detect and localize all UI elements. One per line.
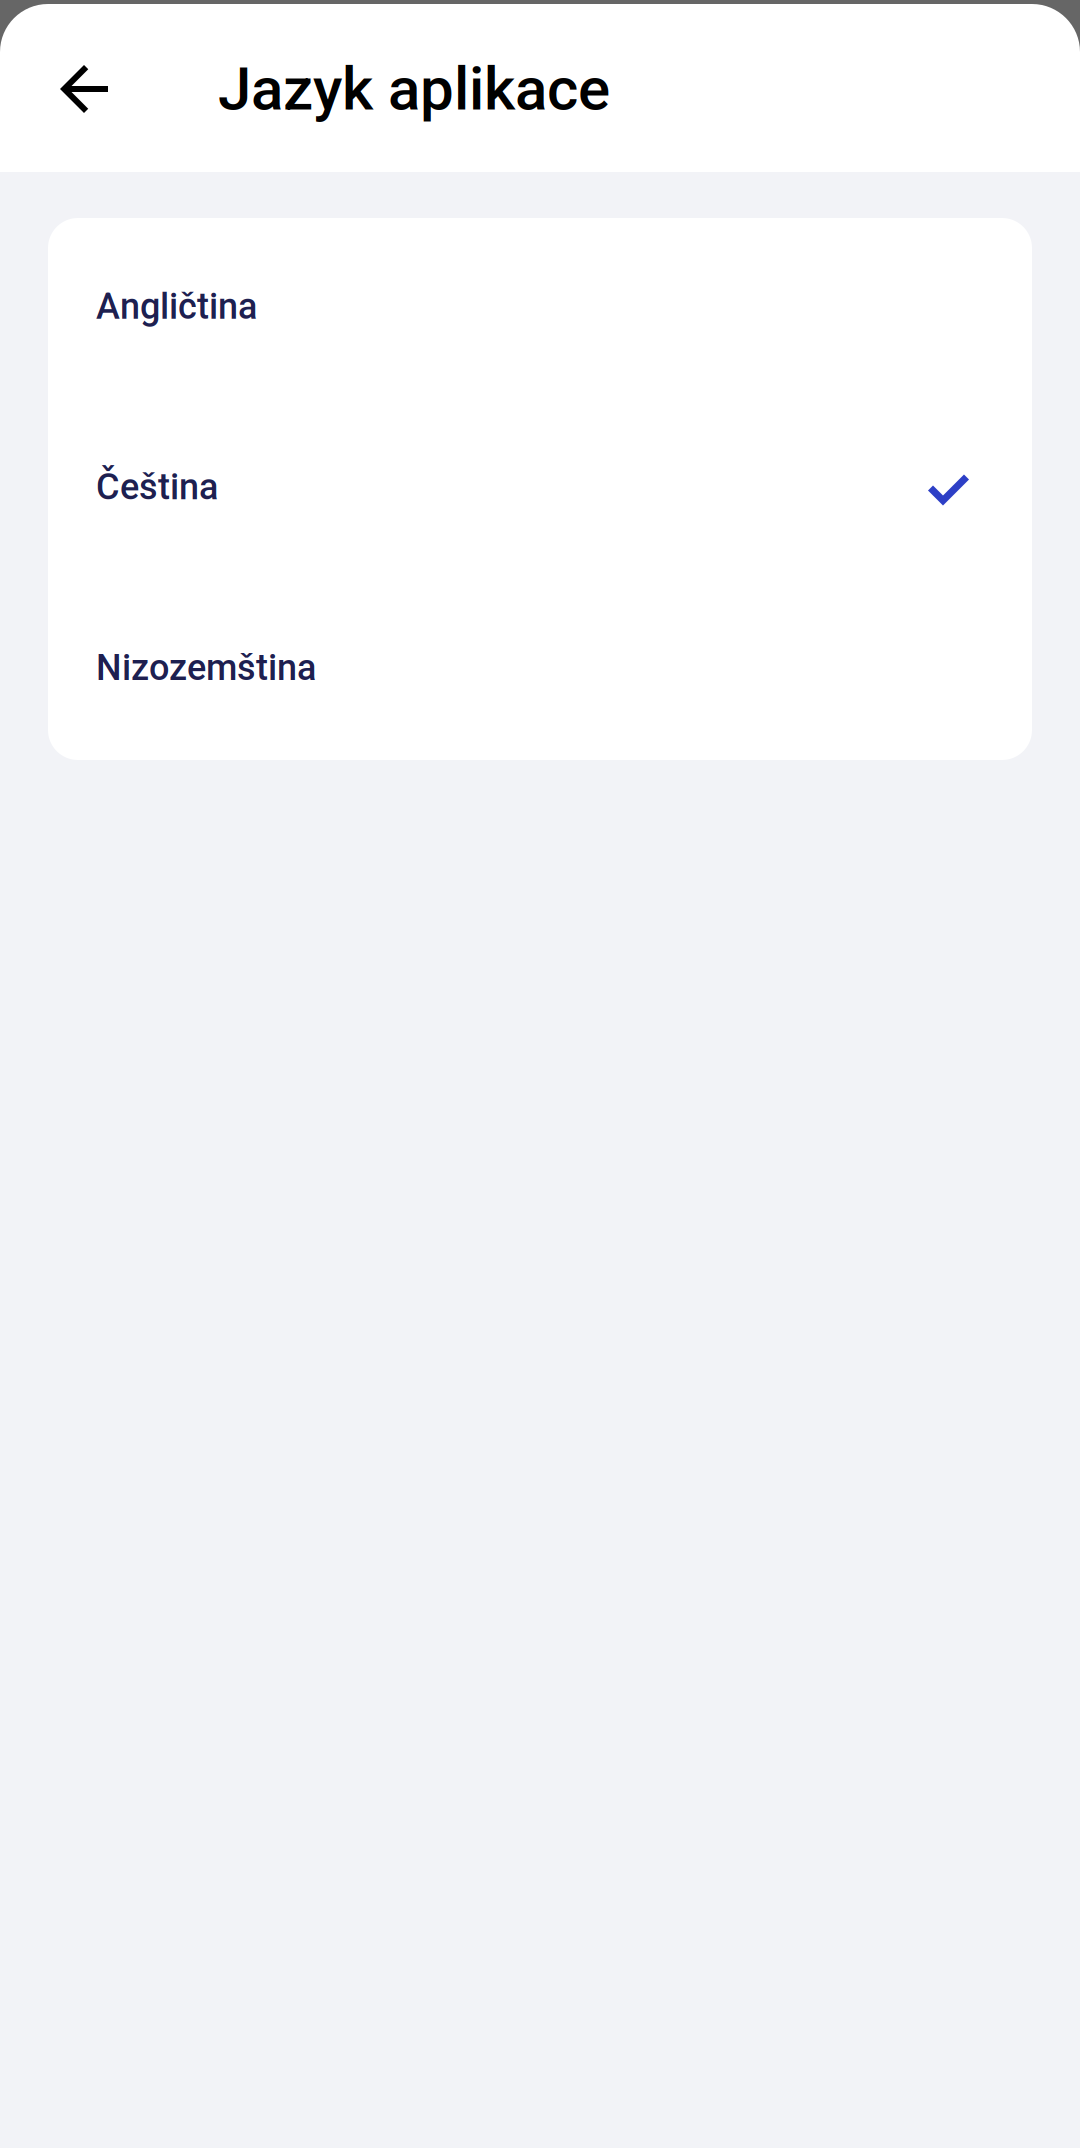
staticText: Nizozemština: [96, 647, 316, 689]
button[interactable]: Nizozemština: [48, 579, 1032, 760]
button[interactable]: Zpět: [48, 37, 144, 141]
staticText: Angličtina: [96, 285, 257, 327]
staticText: Jazyk aplikace: [218, 54, 610, 124]
button[interactable]: Angličtina: [48, 218, 1032, 399]
staticText: Čeština: [96, 466, 218, 508]
button[interactable]: Čeština: [48, 399, 1032, 579]
